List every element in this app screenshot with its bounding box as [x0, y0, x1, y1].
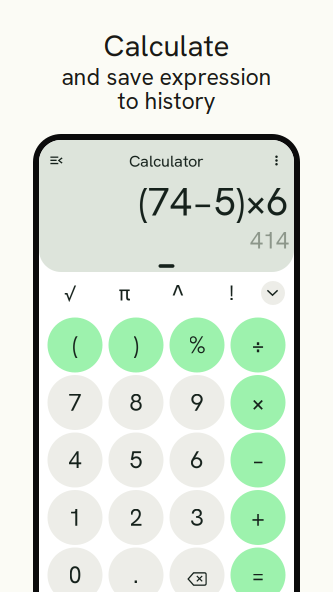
button[interactable]: 7	[47, 375, 102, 430]
staticText: 4	[68, 445, 81, 475]
staticText: =	[251, 560, 264, 590]
button[interactable]: (	[47, 317, 102, 372]
button[interactable]: %	[169, 317, 224, 372]
staticText: Calculate	[103, 27, 229, 65]
staticText: −	[251, 445, 264, 475]
staticText: 3	[190, 502, 203, 533]
staticText: and save expression	[61, 62, 271, 92]
button[interactable]: ×	[230, 375, 285, 430]
staticText: 0	[68, 560, 81, 590]
staticText: 1	[68, 502, 81, 533]
button[interactable]: Backspace	[169, 547, 224, 592]
button[interactable]: More functions	[261, 281, 285, 305]
button[interactable]: −	[230, 432, 285, 487]
button[interactable]: )	[108, 317, 163, 372]
staticText: 414	[250, 225, 289, 256]
staticText: (	[72, 330, 77, 360]
button[interactable]: 8	[108, 375, 163, 430]
staticText: 6	[190, 445, 203, 475]
button[interactable]: 1	[47, 490, 102, 545]
staticText: %	[188, 330, 205, 360]
staticText: )	[133, 330, 138, 360]
staticText: 5	[129, 445, 142, 475]
button[interactable]: 3	[169, 490, 224, 545]
button[interactable]: √	[49, 278, 93, 308]
staticText: Calculator	[129, 150, 204, 172]
button[interactable]: +	[230, 490, 285, 545]
button[interactable]: !	[209, 278, 253, 308]
button[interactable]: .	[108, 547, 163, 592]
button[interactable]: Menu	[41, 147, 71, 173]
staticText: 2	[129, 502, 142, 533]
button[interactable]: 0	[47, 547, 102, 592]
button[interactable]: 5	[108, 432, 163, 487]
button[interactable]: 9	[169, 375, 224, 430]
staticText: √	[64, 279, 77, 307]
button[interactable]: ^	[156, 278, 200, 308]
button[interactable]: 2	[108, 490, 163, 545]
staticText: 7	[68, 387, 81, 418]
button[interactable]: ÷	[230, 317, 285, 372]
staticText: π	[118, 279, 130, 307]
staticText: to history	[117, 86, 215, 116]
button[interactable]: =	[230, 547, 285, 592]
staticText: ×	[251, 387, 264, 418]
button[interactable]: π	[102, 278, 146, 308]
button[interactable]: 6	[169, 432, 224, 487]
button[interactable]: More options	[262, 147, 290, 173]
staticText: +	[251, 502, 264, 533]
staticText: .	[133, 560, 139, 590]
staticText: !	[229, 279, 234, 307]
staticText: ÷	[251, 330, 264, 360]
staticText: 9	[190, 387, 203, 418]
staticText: 8	[129, 387, 142, 418]
staticText: ^	[172, 279, 184, 307]
staticText: (74−5)×6	[139, 177, 289, 227]
button[interactable]: 4	[47, 432, 102, 487]
